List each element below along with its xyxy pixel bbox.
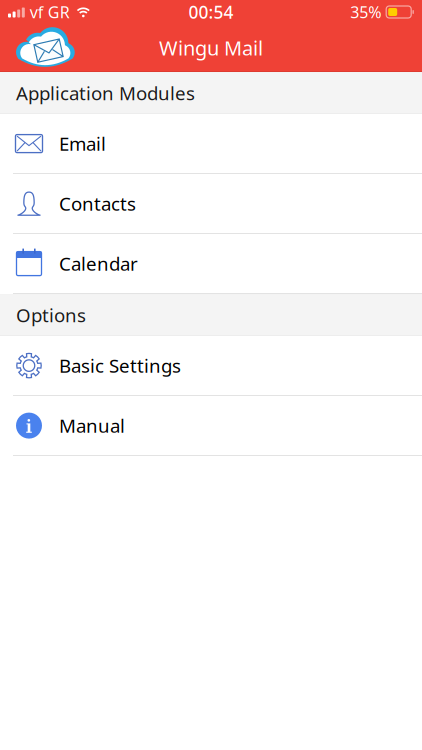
staticText: Email <box>59 131 106 156</box>
button[interactable]: Basic Settings <box>0 336 422 396</box>
button[interactable]: Manual <box>0 396 422 456</box>
staticText: 35% <box>350 1 381 23</box>
staticText: Contacts <box>59 191 136 216</box>
button[interactable]: Calendar <box>0 234 422 294</box>
staticText: 00:54 <box>188 0 233 23</box>
button[interactable]: Email <box>0 114 422 174</box>
staticText: Manual <box>59 413 125 438</box>
staticText: Options <box>16 303 86 327</box>
staticText: vf GR <box>30 1 70 23</box>
staticText: Application Modules <box>16 81 195 105</box>
button[interactable]: Contacts <box>0 174 422 234</box>
staticText: Wingu Mail <box>159 34 263 61</box>
staticText: Basic Settings <box>59 353 181 378</box>
staticText: Calendar <box>59 251 138 276</box>
